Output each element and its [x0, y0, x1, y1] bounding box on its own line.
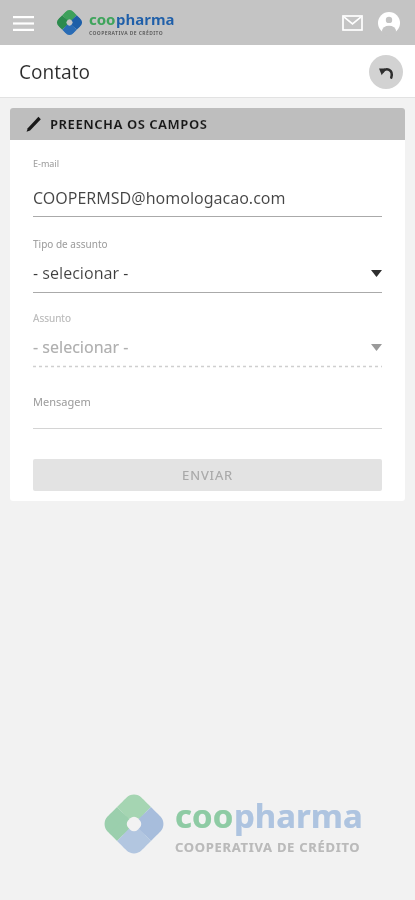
button[interactable]: Voltar [369, 55, 403, 89]
staticText: Assunto [33, 311, 71, 325]
button[interactable]: Perfil [372, 6, 406, 40]
staticText: Tipo de assunto [33, 237, 108, 251]
staticText: - selecionar - [33, 336, 129, 358]
button[interactable]: ENVIAR [33, 459, 382, 491]
staticText: pharma [116, 9, 175, 29]
staticText: COOPERATIVA DE CRÉDITO [175, 838, 361, 856]
staticText: ENVIAR [182, 466, 234, 484]
button[interactable]: - selecionar - [33, 262, 382, 284]
staticText: COOPERMSD@homologacao.com [33, 187, 286, 209]
staticText: - selecionar - [33, 262, 129, 284]
button[interactable]: Menu [5, 5, 41, 41]
staticText: coo [175, 793, 234, 838]
staticText: Mensagem [33, 394, 91, 409]
button[interactable]: Mensagens [335, 6, 369, 40]
staticText: E-mail [33, 157, 60, 169]
staticText: PREENCHA OS CAMPOS [50, 115, 208, 133]
button[interactable]: - selecionar - [33, 336, 382, 358]
staticText: Contato [19, 59, 91, 85]
staticText: COOPERATIVA DE CRÉDITO [89, 30, 164, 37]
staticText: pharma [234, 793, 363, 838]
staticText: coo [89, 9, 116, 29]
